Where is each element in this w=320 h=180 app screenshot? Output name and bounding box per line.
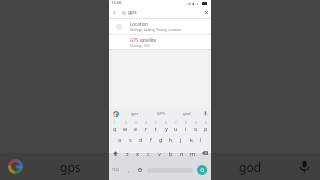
- button[interactable]: a: [114, 133, 125, 146]
- button[interactable]: Backspace: [198, 146, 211, 160]
- staticText: Settings, GPS: [130, 44, 150, 48]
- button[interactable]: gps: [31, 153, 109, 180]
- staticText: 6: [165, 121, 167, 125]
- staticText: t: [155, 125, 157, 132]
- staticText: 7: [175, 121, 177, 125]
- button[interactable]: k: [186, 133, 196, 146]
- staticText: i: [185, 125, 187, 132]
- staticText: o: [194, 125, 198, 132]
- staticText: h: [169, 136, 173, 143]
- staticText: 1: [114, 121, 116, 125]
- staticText: q: [113, 125, 117, 132]
- button[interactable]: Clear: [201, 6, 211, 18]
- button[interactable]: x: [132, 146, 143, 160]
- staticText: Settings, battery, Privacy, Location: [130, 28, 182, 32]
- button[interactable]: 2: [120, 120, 131, 133]
- staticText: b: [169, 150, 173, 157]
- staticText: g: [159, 136, 163, 143]
- staticText: s: [129, 136, 132, 143]
- staticText: 9: [195, 121, 197, 125]
- staticText: 2: [125, 121, 127, 125]
- staticText: gps: [60, 159, 81, 175]
- button[interactable]: Emoji: [135, 160, 144, 180]
- staticText: 5: [155, 121, 157, 125]
- staticText: gps: [131, 111, 139, 117]
- button[interactable]: b: [165, 146, 176, 160]
- button[interactable]: GPS: [148, 107, 174, 120]
- button[interactable]: 1: [109, 120, 120, 133]
- staticText: 12:06: [111, 0, 122, 6]
- button[interactable]: Voice input: [200, 107, 211, 120]
- button[interactable]: god: [174, 107, 200, 120]
- staticText: GPS satellite: [130, 37, 157, 43]
- staticText: n: [180, 150, 184, 157]
- staticText: a: [118, 136, 122, 143]
- staticText: gps: [128, 9, 137, 16]
- staticText: god: [239, 159, 262, 175]
- button[interactable]: god: [211, 153, 289, 180]
- staticText: w: [123, 125, 128, 132]
- button[interactable]: 5: [151, 120, 161, 133]
- button[interactable]: 0: [201, 120, 211, 133]
- staticText: e: [134, 125, 138, 132]
- staticText: 8: [185, 121, 187, 125]
- staticText: p: [204, 125, 208, 132]
- staticText: 4: [145, 121, 147, 125]
- staticText: j: [180, 136, 182, 143]
- button[interactable]: Back: [109, 6, 120, 18]
- button[interactable]: Search: [197, 165, 207, 175]
- button[interactable]: 4: [141, 120, 151, 133]
- button[interactable]: m: [187, 146, 198, 160]
- button[interactable]: Google: [0, 153, 31, 180]
- staticText: d: [139, 136, 143, 143]
- button[interactable]: 9: [191, 120, 201, 133]
- button[interactable]: 7: [171, 120, 181, 133]
- button[interactable]: j: [176, 133, 186, 146]
- button[interactable]: z: [122, 146, 132, 160]
- staticText: k: [190, 136, 193, 143]
- button[interactable]: 3: [131, 120, 141, 133]
- staticText: r: [145, 125, 148, 132]
- staticText: ?123: [112, 168, 119, 172]
- staticText: f: [150, 136, 152, 143]
- staticText: GPS: [157, 111, 165, 117]
- button[interactable]: Google: [109, 107, 122, 120]
- button[interactable]: 8: [181, 120, 191, 133]
- staticText: z: [126, 150, 129, 157]
- button[interactable]: 6: [161, 120, 171, 133]
- button[interactable]: Back: [109, 6, 211, 18]
- button[interactable]: s: [125, 133, 136, 146]
- staticText: l: [200, 136, 202, 143]
- staticText: v: [158, 150, 161, 157]
- button[interactable]: l: [196, 133, 206, 146]
- button[interactable]: gps: [122, 107, 148, 120]
- staticText: Location: [130, 21, 149, 27]
- button[interactable]: ?123: [109, 160, 122, 180]
- staticText: 0: [205, 121, 207, 125]
- staticText: c: [147, 150, 150, 157]
- staticText: y: [165, 125, 168, 132]
- button[interactable]: g: [156, 133, 166, 146]
- staticText: u: [174, 125, 178, 132]
- button[interactable]: d: [136, 133, 146, 146]
- staticText: 3: [135, 121, 137, 125]
- staticText: m: [190, 150, 196, 157]
- button[interactable]: h: [166, 133, 176, 146]
- staticText: x: [136, 150, 139, 157]
- button[interactable]: Shift: [109, 146, 122, 160]
- button[interactable]: f: [146, 133, 156, 146]
- staticText: god: [183, 111, 191, 117]
- staticText: ,: [128, 167, 130, 173]
- button[interactable]: Voice search: [289, 153, 320, 180]
- button[interactable]: v: [154, 146, 165, 160]
- button[interactable]: n: [176, 146, 187, 160]
- button[interactable]: c: [143, 146, 154, 160]
